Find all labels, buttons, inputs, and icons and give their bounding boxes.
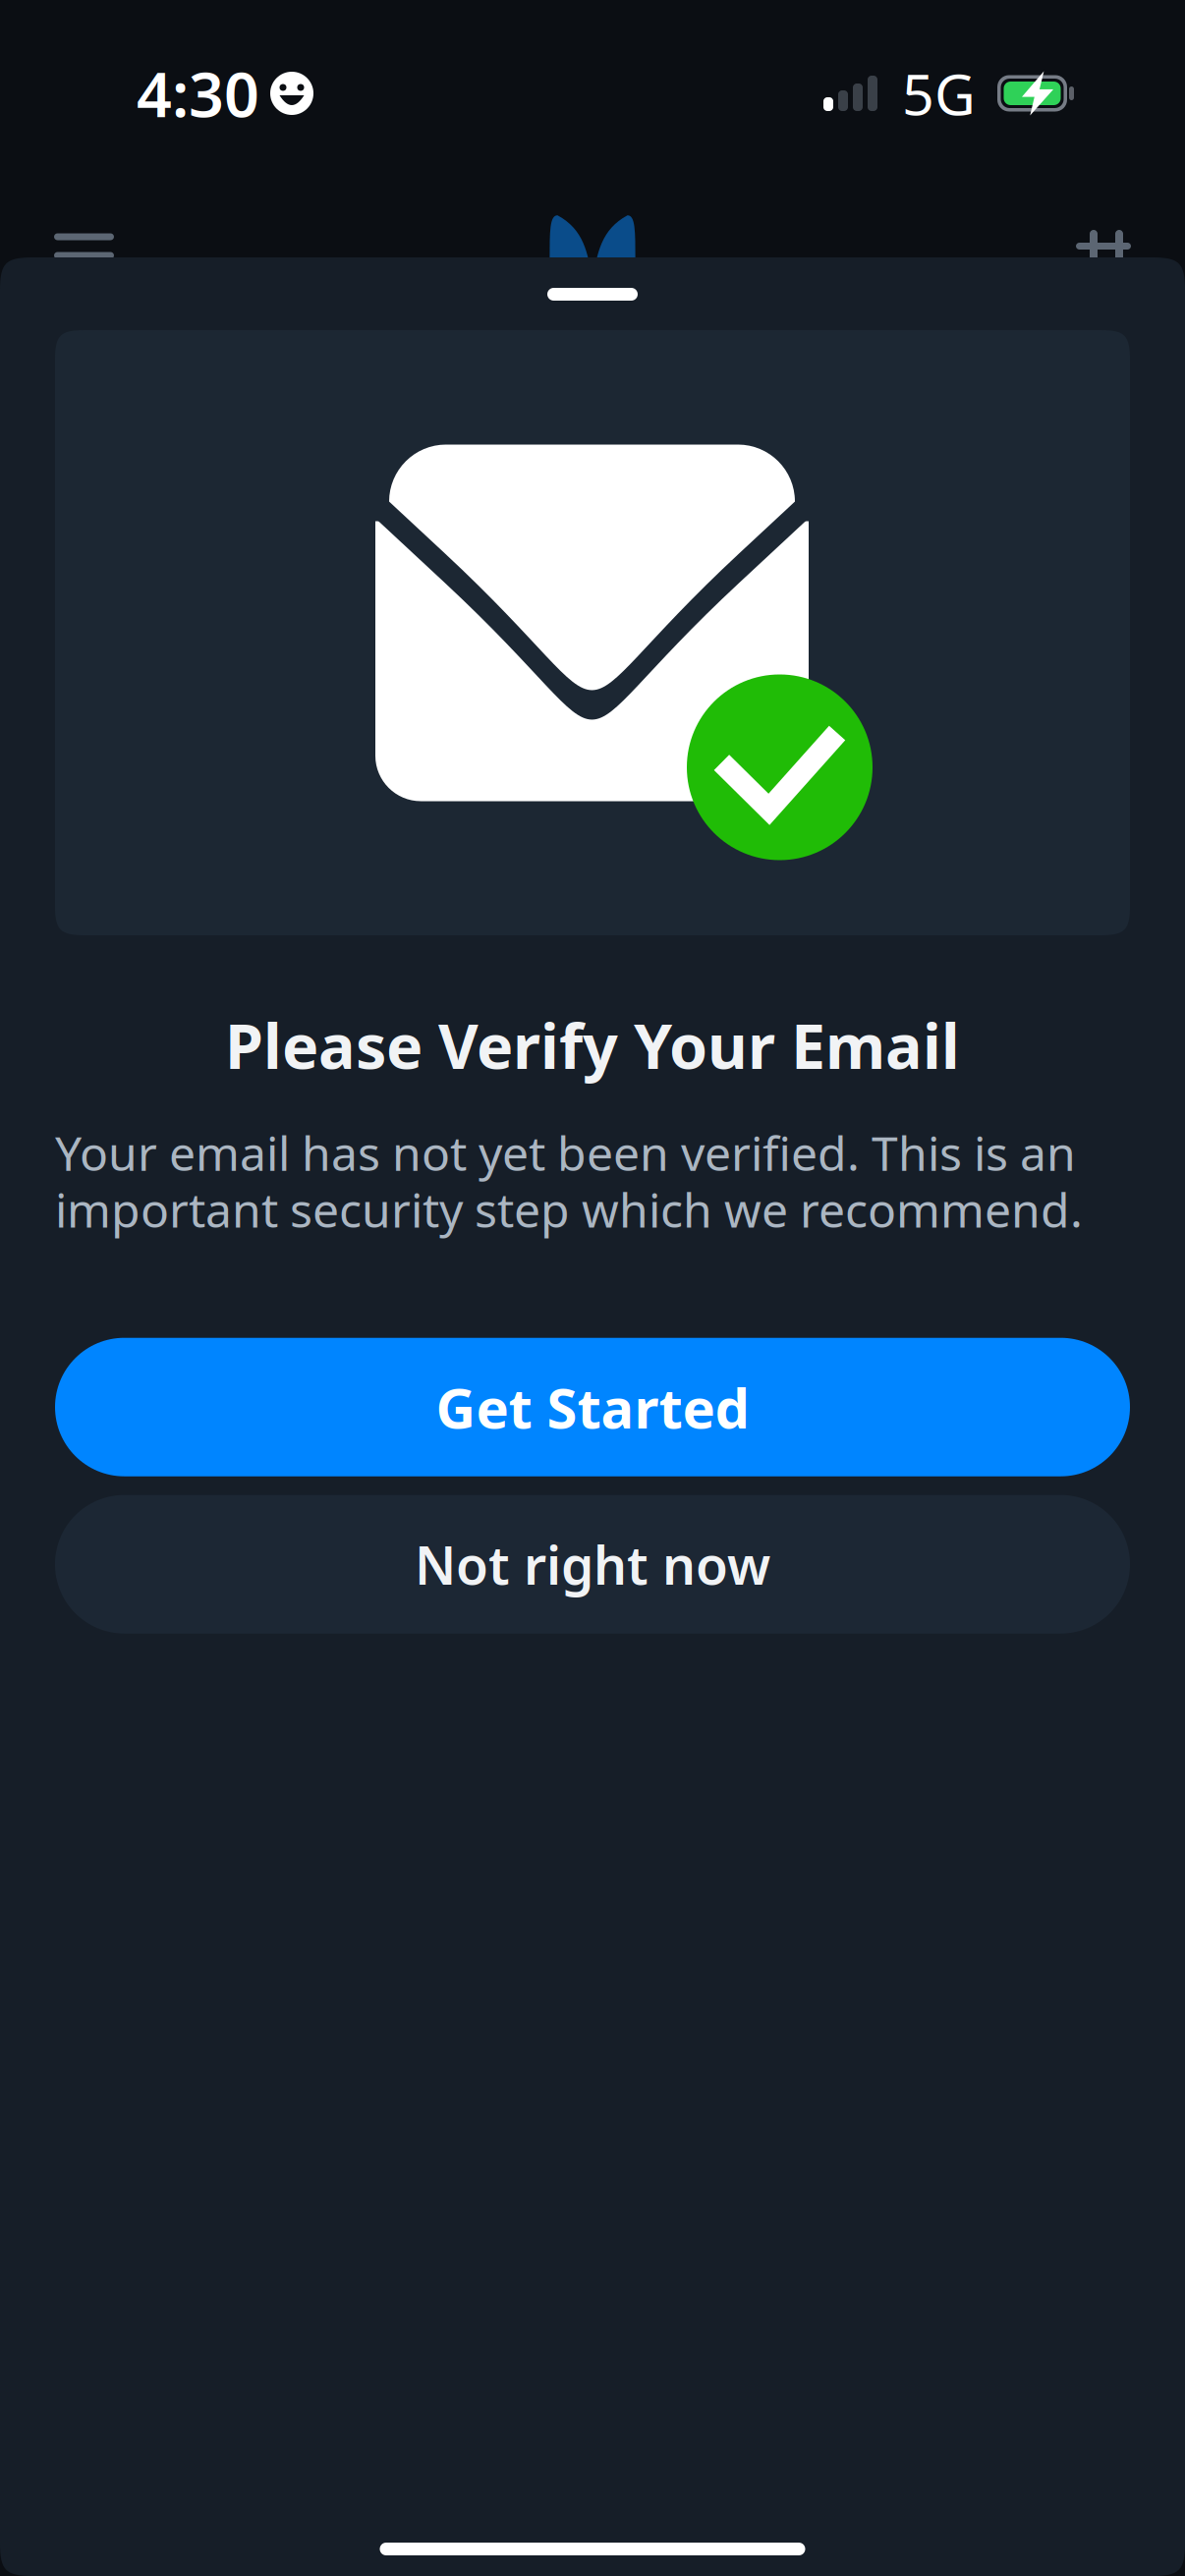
staticText: Get Started xyxy=(436,1371,749,1444)
button[interactable]: Menu xyxy=(54,214,152,297)
staticText: Please Verify Your Email xyxy=(225,1004,960,1086)
staticText: 5G xyxy=(902,56,976,131)
staticText: Your email has not yet been verified. Th… xyxy=(55,1121,1076,1184)
button[interactable]: Not right now xyxy=(55,1495,1130,1634)
button[interactable]: Get Started xyxy=(55,1338,1130,1476)
button[interactable]: Feeds xyxy=(1033,214,1131,297)
staticText: Not right now xyxy=(415,1529,770,1599)
staticText: 4:30 xyxy=(137,52,259,134)
staticText: important security step which we recomme… xyxy=(55,1178,1083,1241)
